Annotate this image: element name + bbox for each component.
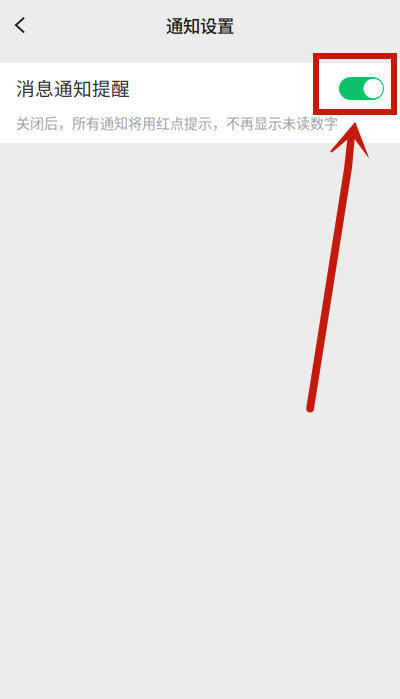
button[interactable]: Back <box>0 7 40 43</box>
staticText: 关闭后，所有通知将用红点提示，不再显示未读数字 <box>16 112 338 133</box>
staticText: 通知设置 <box>166 12 234 38</box>
button[interactable]: 消息通知提醒 <box>0 63 400 112</box>
staticText: 消息通知提醒 <box>16 74 130 101</box>
